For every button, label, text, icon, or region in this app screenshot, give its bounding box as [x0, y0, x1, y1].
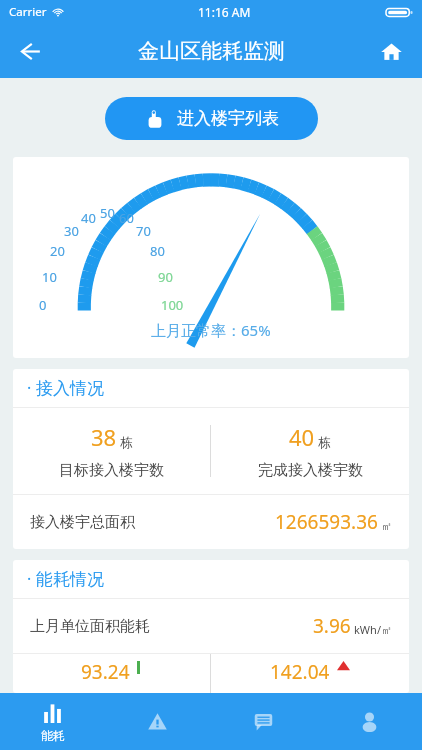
- staticText: ·: [27, 568, 32, 590]
- staticText: kWh/㎡: [354, 622, 392, 637]
- staticText: 142.04: [270, 659, 330, 685]
- button[interactable]: 接入楼宇总面积: [30, 495, 392, 549]
- staticText: 0: [39, 296, 63, 314]
- staticText: ㎡: [381, 519, 392, 533]
- staticText: 30: [64, 222, 88, 240]
- button[interactable]: 142.04: [211, 654, 409, 693]
- button[interactable]: Profile: [316, 693, 422, 750]
- staticText: 上月单位面积能耗: [30, 617, 150, 636]
- staticText: 100: [161, 296, 185, 314]
- staticText: 金山区能耗监测: [138, 38, 285, 64]
- button[interactable]: Home: [369, 29, 413, 73]
- staticText: 40: [289, 422, 315, 452]
- staticText: 20: [50, 242, 74, 260]
- button[interactable]: 进入楼宇列表: [105, 97, 318, 140]
- staticText: 目标接入楼宇数: [59, 461, 164, 480]
- staticText: 栋: [318, 434, 331, 450]
- button[interactable]: Alerts: [105, 693, 210, 750]
- staticText: 进入楼宇列表: [177, 108, 279, 129]
- staticText: 38: [91, 422, 117, 452]
- staticText: 上月正常率：65%: [151, 320, 271, 340]
- staticText: 50: [100, 204, 124, 222]
- staticText: 40: [81, 209, 105, 227]
- button[interactable]: 能耗: [0, 693, 105, 750]
- button[interactable]: 93.24: [13, 654, 210, 693]
- staticText: 80: [150, 242, 174, 260]
- staticText: 70: [136, 222, 160, 240]
- staticText: ·: [27, 377, 32, 399]
- staticText: 能耗情况: [36, 569, 104, 590]
- staticText: 接入情况: [36, 378, 104, 399]
- staticText: 90: [158, 268, 182, 286]
- staticText: 60: [119, 209, 143, 227]
- staticText: 93.24: [81, 659, 130, 685]
- button[interactable]: 40: [211, 408, 409, 494]
- staticText: 1266593.36: [275, 509, 378, 535]
- button[interactable]: Back: [5, 27, 53, 75]
- button[interactable]: Messages: [210, 693, 316, 750]
- staticText: 10: [42, 268, 66, 286]
- button[interactable]: 38: [13, 408, 210, 494]
- staticText: 能耗: [41, 728, 65, 743]
- staticText: 11:16 AM: [198, 4, 251, 20]
- staticText: 栋: [120, 434, 133, 450]
- button[interactable]: 上月单位面积能耗: [30, 599, 392, 653]
- staticText: Carrier: [9, 4, 47, 20]
- staticText: 接入楼宇总面积: [30, 513, 135, 532]
- staticText: 3.96: [313, 613, 351, 639]
- staticText: 完成接入楼宇数: [258, 461, 363, 480]
